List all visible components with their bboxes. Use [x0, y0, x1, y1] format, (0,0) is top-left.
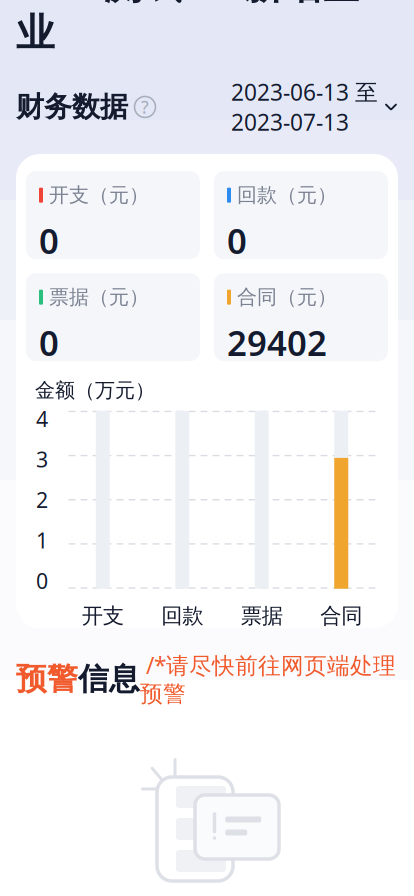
staticText: 金额（万元） [35, 378, 155, 403]
staticText: 0 [227, 217, 247, 263]
staticText: 财务数据 [16, 90, 128, 124]
staticText: 29402 [227, 319, 327, 365]
staticText: 0605测试 et 新增企业 [16, 0, 361, 57]
button[interactable]: 帮助 [128, 90, 162, 124]
staticText: 开支 [82, 603, 124, 629]
staticText: 2 [36, 486, 48, 514]
staticText: 2023-06-13 至 2023-07-13 [231, 77, 378, 137]
staticText: 0 [39, 319, 59, 365]
staticText: 3 [36, 445, 48, 473]
staticText: 开支（元） [49, 183, 149, 207]
staticText: 0 [36, 567, 48, 595]
staticText: 回款 [161, 603, 203, 629]
staticText: 合同（元） [237, 285, 337, 309]
staticText: 信息 [78, 660, 140, 698]
staticText: 票据（元） [49, 285, 149, 309]
staticText: 4 [36, 405, 48, 433]
staticText: 票据 [241, 603, 283, 629]
button[interactable]: 2023-06-13 至 2023-07-13 [231, 71, 398, 143]
staticText: 1 [36, 526, 48, 554]
staticText: 0 [39, 217, 59, 263]
staticText: 回款（元） [237, 183, 337, 207]
staticText: 预警 [16, 660, 78, 698]
staticText: ? [141, 95, 149, 118]
staticText: /*请尽快前往网页端处理预警 [140, 650, 396, 708]
staticText: 合同 [320, 603, 362, 629]
